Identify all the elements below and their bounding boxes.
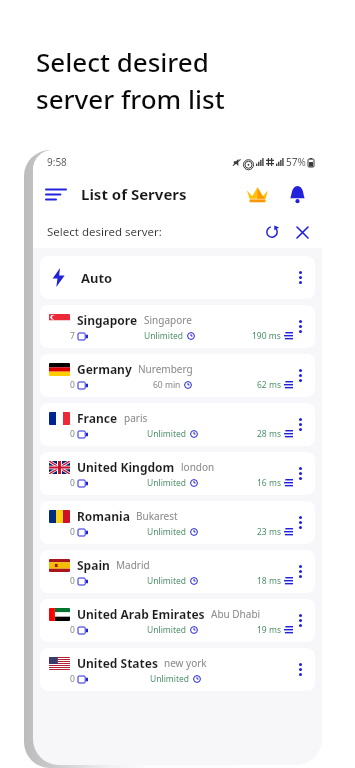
staticText: 0: [70, 428, 75, 440]
staticText: 62 ms: [257, 379, 281, 391]
staticText: 0: [70, 673, 75, 685]
staticText: Unlimited: [147, 477, 187, 489]
staticText: Romania: [77, 508, 130, 524]
staticText: 57%: [286, 155, 306, 169]
staticText: Germany: [77, 361, 132, 377]
staticText: 28 ms: [257, 428, 281, 440]
staticText: 0: [70, 624, 75, 636]
button[interactable]: United States: [40, 648, 315, 691]
button[interactable]: Refresh: [260, 220, 284, 244]
button[interactable]: Notifications: [282, 179, 312, 209]
staticText: Singapore: [77, 312, 138, 328]
staticText: 18 ms: [257, 575, 281, 587]
staticText: List of Servers: [81, 184, 187, 204]
staticText: United Kingdom: [77, 459, 175, 475]
staticText: 9:58: [47, 155, 67, 169]
button[interactable]: United Arab Emirates: [40, 599, 315, 642]
button[interactable]: Germany: [40, 354, 315, 397]
staticText: 23 ms: [257, 526, 281, 538]
button[interactable]: Menu: [39, 177, 73, 211]
staticText: Bukarest: [136, 509, 178, 523]
button[interactable]: United Kingdom: [40, 452, 315, 495]
staticText: 0: [70, 379, 75, 391]
staticText: Unlimited: [147, 575, 187, 587]
staticText: Select desired: [36, 44, 209, 79]
staticText: Singapore: [144, 313, 192, 327]
staticText: Select desired server:: [47, 224, 162, 240]
staticText: new york: [164, 656, 207, 670]
button[interactable]: Spain: [40, 550, 315, 593]
staticText: server from list: [36, 81, 225, 116]
button[interactable]: Close: [290, 220, 314, 244]
staticText: Abu Dhabi: [211, 607, 261, 621]
staticText: london: [181, 460, 215, 474]
staticText: Unlimited: [147, 526, 187, 538]
button[interactable]: Premium: [242, 179, 272, 209]
staticText: 16 ms: [257, 477, 281, 489]
staticText: 0: [70, 526, 75, 538]
staticText: 60 min: [153, 379, 181, 391]
staticText: 0: [70, 477, 75, 489]
staticText: France: [77, 410, 118, 426]
staticText: Unlimited: [147, 624, 187, 636]
staticText: Spain: [77, 557, 110, 573]
staticText: 0: [70, 575, 75, 587]
staticText: Madrid: [116, 558, 150, 572]
staticText: paris: [124, 411, 148, 425]
staticText: Unlimited: [144, 330, 184, 342]
staticText: Unlimited: [147, 428, 187, 440]
staticText: 19 ms: [257, 624, 281, 636]
staticText: 7: [70, 330, 75, 342]
button[interactable]: Singapore: [40, 305, 315, 348]
staticText: United Arab Emirates: [77, 606, 205, 622]
button[interactable]: Romania: [40, 501, 315, 544]
staticText: United States: [77, 655, 158, 671]
button[interactable]: Auto: [40, 256, 315, 299]
button[interactable]: France: [40, 403, 315, 446]
staticText: Nuremberg: [138, 362, 193, 376]
staticText: Unlimited: [150, 673, 190, 685]
staticText: Auto: [81, 269, 113, 287]
staticText: 190 ms: [252, 330, 281, 342]
